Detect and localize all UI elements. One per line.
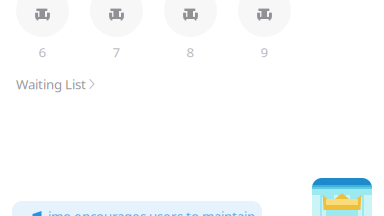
staticText: 6	[38, 43, 46, 61]
button[interactable]: imo encourages users to maintain	[12, 201, 262, 216]
staticText: 9	[260, 43, 268, 61]
staticText: imo encourages users to maintain	[48, 207, 255, 216]
staticText: 7	[112, 43, 120, 61]
button[interactable]: 6	[16, 0, 69, 58]
button[interactable]: 9	[238, 0, 291, 58]
button[interactable]: 7	[90, 0, 143, 58]
button[interactable]: Waiting List	[0, 74, 384, 94]
staticText: 8	[186, 43, 194, 61]
button[interactable]: 8	[164, 0, 217, 58]
button[interactable]: Promotion	[312, 178, 372, 216]
staticText: Waiting List	[16, 75, 86, 93]
